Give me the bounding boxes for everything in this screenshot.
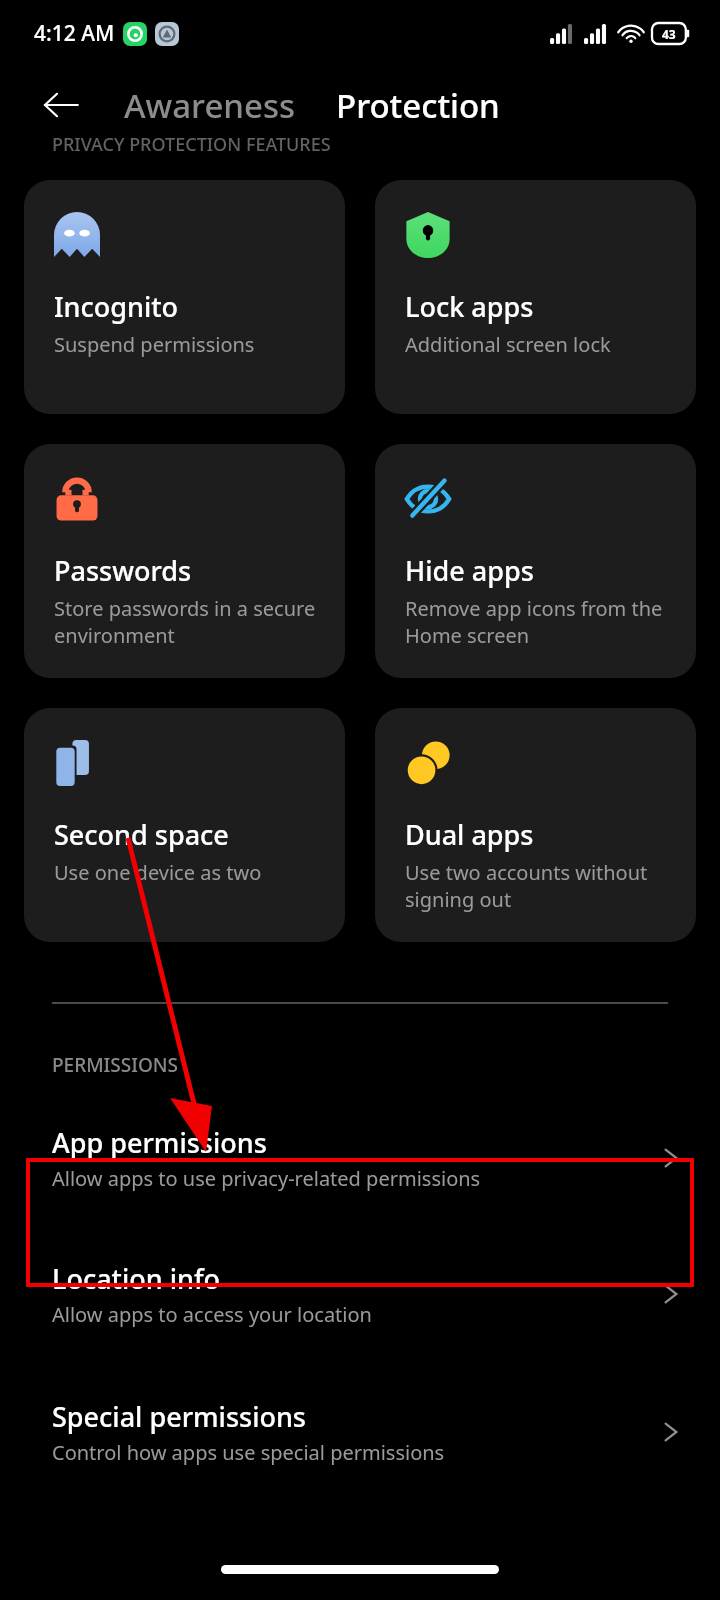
staticText: Control how apps use special permissions <box>52 1439 445 1466</box>
button[interactable]: Protection <box>330 75 506 136</box>
button[interactable]: Dual apps <box>375 708 696 942</box>
staticText: Special permissions <box>52 1398 306 1435</box>
staticText: PERMISSIONS <box>52 1052 179 1078</box>
staticText: Remove app icons from the Home screen <box>405 595 678 649</box>
button[interactable]: Special permissions <box>0 1376 720 1488</box>
staticText: Use two accounts without signing out <box>405 859 678 913</box>
button[interactable]: Hide apps <box>375 444 696 678</box>
staticText: Allow apps to use privacy-related permis… <box>52 1165 481 1192</box>
button[interactable]: Passwords <box>24 444 345 678</box>
button[interactable]: Location info <box>0 1238 720 1350</box>
staticText: Awareness <box>124 83 296 128</box>
button[interactable]: Back <box>34 78 88 132</box>
staticText: Location info <box>52 1260 221 1297</box>
staticText: Lock apps <box>405 288 534 325</box>
staticText: Allow apps to access your location <box>52 1301 372 1328</box>
staticText: Store passwords in a secure environment <box>54 595 327 649</box>
staticText: Use one device as two <box>54 859 262 886</box>
staticText: Additional screen lock <box>405 331 611 358</box>
button[interactable]: Incognito <box>24 180 345 414</box>
staticText: Passwords <box>54 552 192 589</box>
staticText: Suspend permissions <box>54 331 255 358</box>
button[interactable]: App permissions <box>0 1102 720 1214</box>
staticText: App permissions <box>52 1124 267 1161</box>
staticText: PRIVACY PROTECTION FEATURES <box>52 132 331 154</box>
staticText: Hide apps <box>405 552 534 589</box>
staticText: Incognito <box>54 288 179 325</box>
staticText: Second space <box>54 816 229 853</box>
staticText: Dual apps <box>405 816 534 853</box>
staticText: 4:12 AM <box>34 19 115 48</box>
button[interactable]: Second space <box>24 708 345 942</box>
staticText: Protection <box>336 83 500 128</box>
staticText: 43 <box>662 26 676 42</box>
button[interactable]: Lock apps <box>375 180 696 414</box>
button[interactable]: Awareness <box>118 75 302 136</box>
